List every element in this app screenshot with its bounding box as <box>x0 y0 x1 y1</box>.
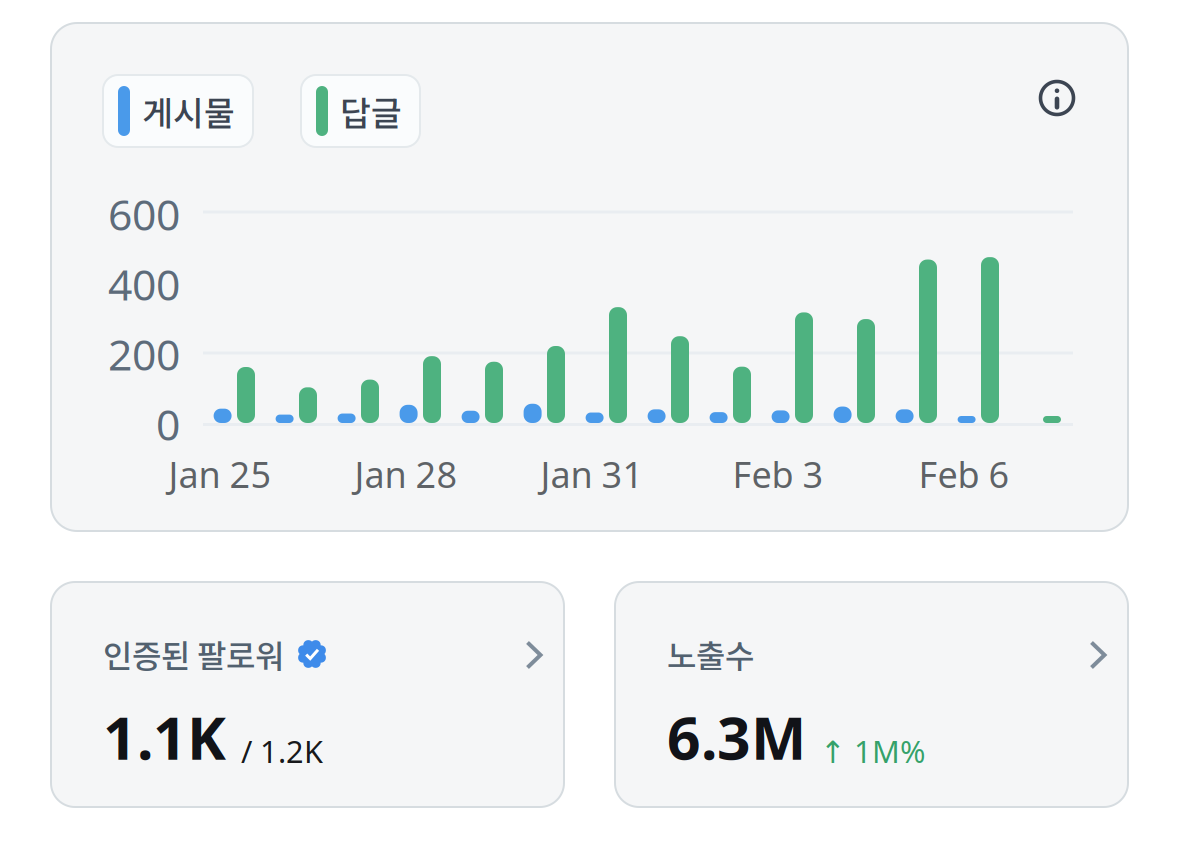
staticText: 200 <box>108 326 180 382</box>
staticText: Feb 3 <box>732 450 823 498</box>
staticText: 게시물 <box>142 87 235 135</box>
staticText: Jan 25 <box>168 450 271 498</box>
staticText: 600 <box>108 186 180 242</box>
staticText: 400 <box>108 256 180 312</box>
staticText: Feb 6 <box>918 450 1009 498</box>
staticText: 6.3M <box>667 698 806 776</box>
button[interactable]: 노출수 <box>615 582 1128 807</box>
staticText: 인증된 팔로워 <box>103 631 284 677</box>
button[interactable]: 답글 <box>301 75 420 147</box>
staticText: / 1.2K <box>241 731 323 771</box>
staticText: 0 <box>156 396 180 452</box>
staticText: 노출수 <box>667 631 754 677</box>
staticText: 1.1K <box>103 698 226 776</box>
staticText: 답글 <box>340 87 402 135</box>
button[interactable]: 정보 <box>1029 70 1085 126</box>
staticText: Jan 31 <box>540 450 643 498</box>
button[interactable]: 게시물 <box>103 75 253 147</box>
staticText: ↑ 1M% <box>820 731 925 771</box>
staticText: Jan 28 <box>354 450 457 498</box>
button[interactable]: 인증된 팔로워 <box>51 582 564 807</box>
